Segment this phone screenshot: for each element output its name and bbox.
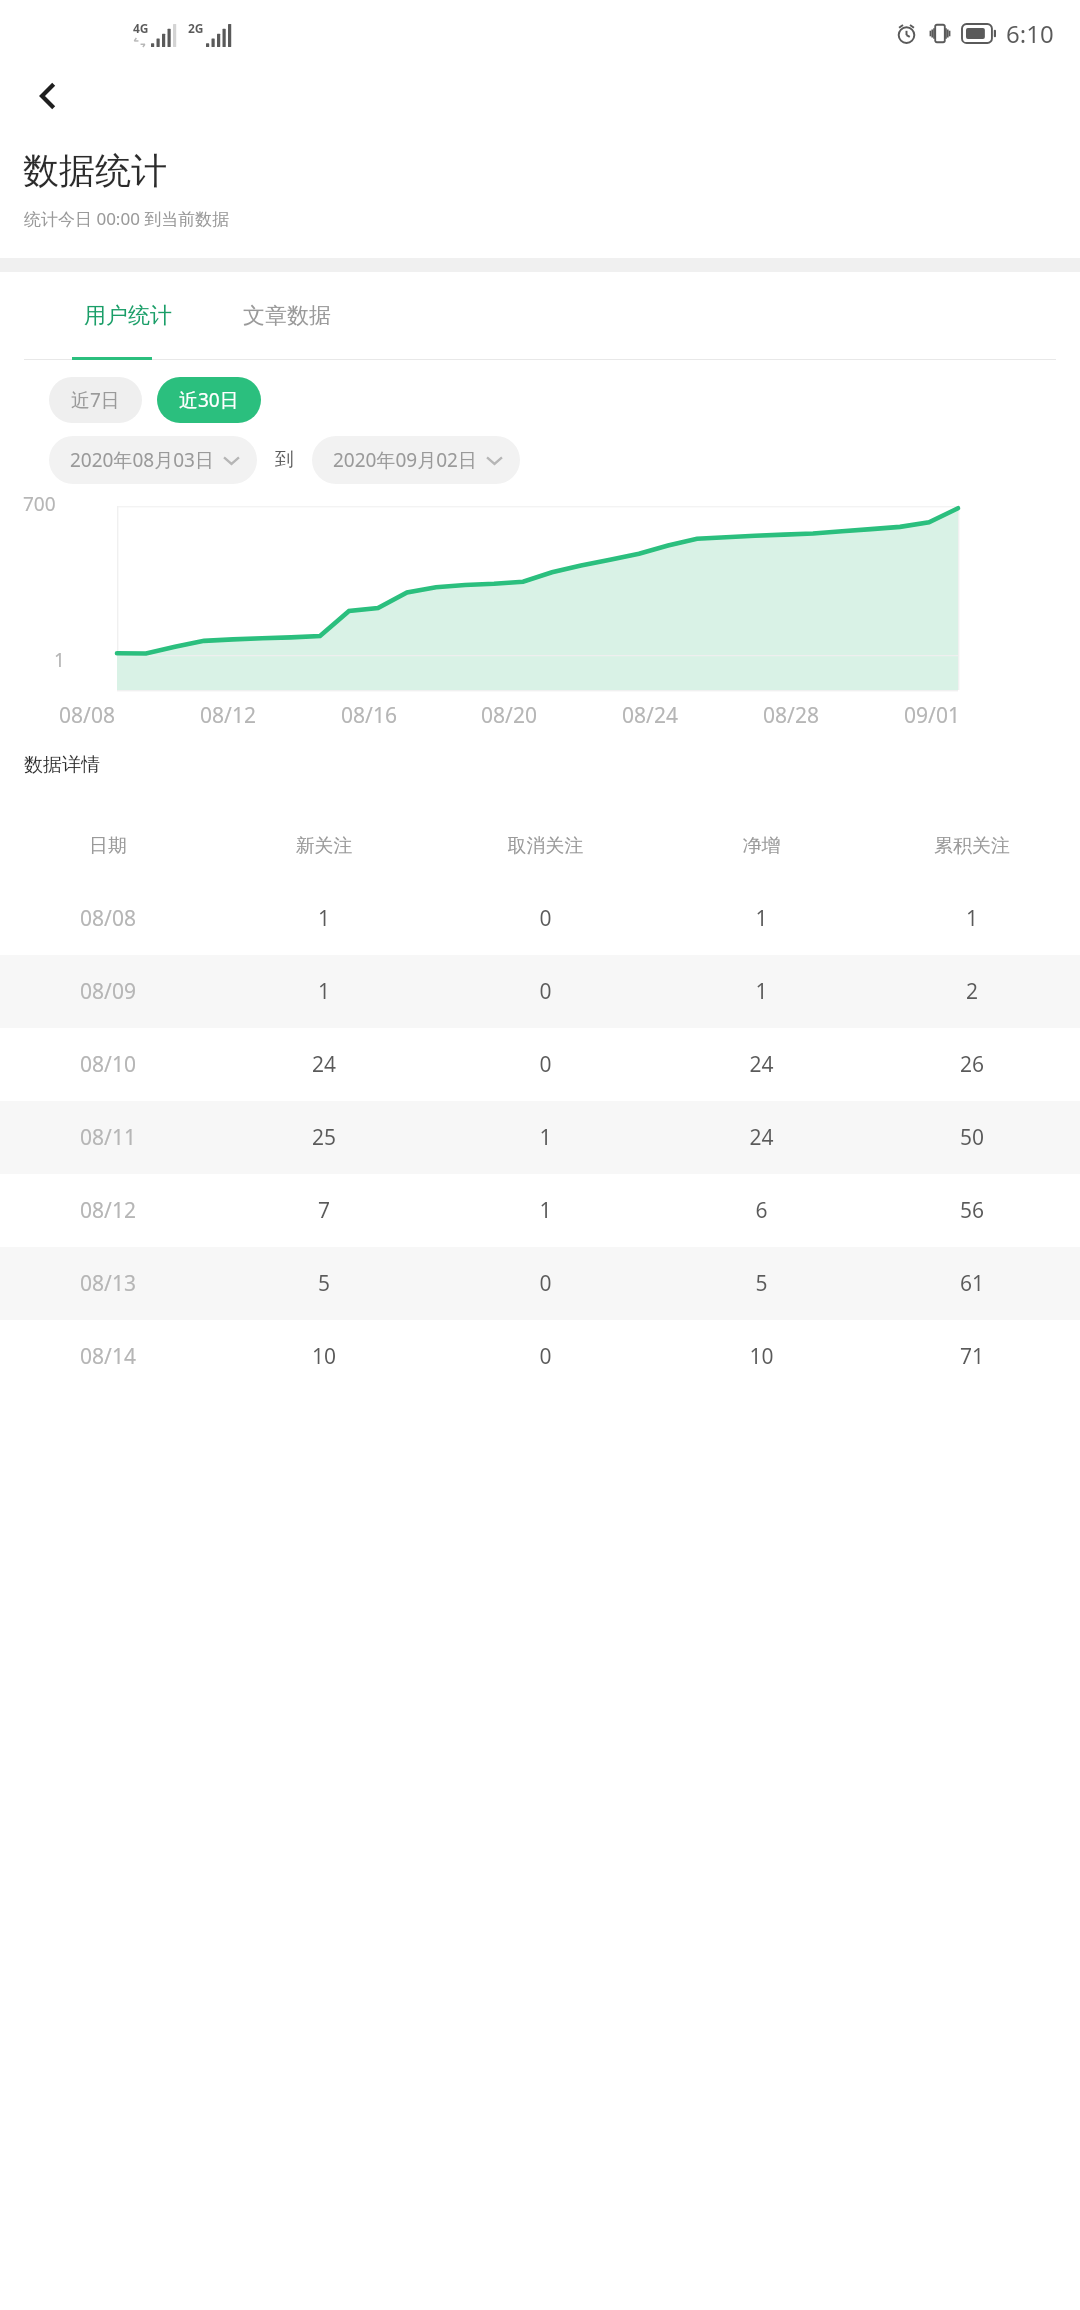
staticText: 5 — [216, 1269, 432, 1298]
staticText: 700 — [23, 491, 56, 517]
staticText: 累积关注 — [864, 834, 1080, 858]
staticText: 50 — [864, 1123, 1080, 1152]
staticText: 1 — [216, 904, 432, 933]
button[interactable]: 08/13 — [0, 1247, 1080, 1320]
staticText: 2020年08月03日 — [70, 447, 214, 473]
staticText: 数据统计 — [23, 148, 167, 193]
staticText: 6 — [659, 1196, 864, 1225]
button[interactable]: 近30日 — [157, 377, 261, 423]
staticText: 09/01 — [887, 701, 977, 730]
staticText: 08/08 — [42, 701, 132, 730]
staticText: 08/12 — [0, 1196, 216, 1225]
staticText: 1 — [659, 977, 864, 1006]
staticText: 08/14 — [0, 1342, 216, 1371]
button[interactable]: 2020年08月03日 — [49, 436, 257, 484]
staticText: 1 — [432, 1196, 659, 1225]
staticText: 08/08 — [0, 904, 216, 933]
staticText: 数据详情 — [24, 753, 100, 777]
button[interactable]: 近7日 — [49, 377, 142, 423]
button[interactable]: 08/09 — [0, 955, 1080, 1028]
staticText: 0 — [432, 1342, 659, 1371]
staticText: 7 — [216, 1196, 432, 1225]
staticText: 71 — [864, 1342, 1080, 1371]
staticText: 0 — [432, 1050, 659, 1079]
button[interactable]: 08/12 — [0, 1174, 1080, 1247]
button[interactable]: 08/10 — [0, 1028, 1080, 1101]
staticText: 08/16 — [324, 701, 414, 730]
staticText: 56 — [864, 1196, 1080, 1225]
staticText: 2020年09月02日 — [333, 447, 477, 473]
staticText: 24 — [659, 1123, 864, 1152]
staticText: 2G — [188, 20, 204, 36]
staticText: 08/10 — [0, 1050, 216, 1079]
button[interactable]: 08/11 — [0, 1101, 1080, 1174]
button[interactable]: 08/14 — [0, 1320, 1080, 1393]
staticText: 08/20 — [464, 701, 554, 730]
staticText: 08/28 — [746, 701, 836, 730]
staticText: 24 — [659, 1050, 864, 1079]
staticText: 10 — [659, 1342, 864, 1371]
staticText: 25 — [216, 1123, 432, 1152]
staticText: 5 — [659, 1269, 864, 1298]
staticText: 1 — [864, 904, 1080, 933]
staticText: 08/13 — [0, 1269, 216, 1298]
staticText: 文章数据 — [243, 302, 331, 330]
staticText: 0 — [432, 904, 659, 933]
button[interactable]: 用户统计 — [72, 286, 184, 346]
button[interactable]: 2020年09月02日 — [312, 436, 520, 484]
staticText: 26 — [864, 1050, 1080, 1079]
staticText: 到 — [275, 448, 294, 472]
staticText: 用户统计 — [84, 302, 172, 330]
staticText: 日期 — [0, 834, 216, 858]
staticText: 08/24 — [605, 701, 695, 730]
staticText: 新关注 — [216, 834, 432, 858]
staticText: 4G — [133, 20, 149, 36]
staticText: 统计今日 00:00 到当前数据 — [24, 207, 230, 230]
staticText: 61 — [864, 1269, 1080, 1298]
button[interactable]: 文章数据 — [231, 286, 343, 346]
staticText: 近30日 — [179, 387, 239, 413]
staticText: 1 — [659, 904, 864, 933]
staticText: 08/11 — [0, 1123, 216, 1152]
staticText: 08/09 — [0, 977, 216, 1006]
staticText: 0 — [432, 977, 659, 1006]
staticText: 24 — [216, 1050, 432, 1079]
staticText: 近7日 — [71, 387, 120, 413]
button[interactable]: Back — [18, 66, 78, 126]
staticText: 6:10 — [1006, 17, 1054, 50]
staticText: 1 — [216, 977, 432, 1006]
button[interactable]: 08/08 — [0, 882, 1080, 955]
staticText: 取消关注 — [432, 834, 659, 858]
staticText: 10 — [216, 1342, 432, 1371]
staticText: 08/12 — [183, 701, 273, 730]
staticText: 0 — [432, 1269, 659, 1298]
button[interactable]: 日期 — [0, 809, 1080, 882]
staticText: 2 — [864, 977, 1080, 1006]
staticText: 1 — [432, 1123, 659, 1152]
staticText: 1 — [54, 647, 65, 673]
staticText: 净增 — [659, 834, 864, 858]
